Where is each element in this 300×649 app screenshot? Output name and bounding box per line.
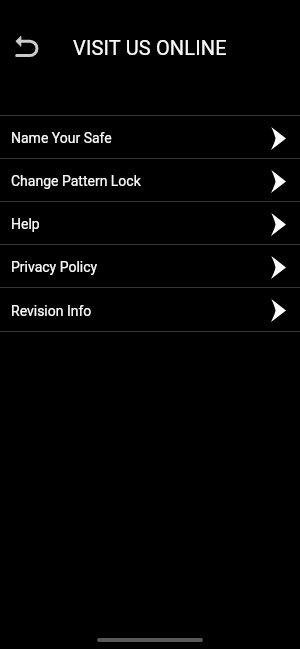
button[interactable]: Privacy Policy bbox=[0, 245, 300, 287]
button[interactable]: Back bbox=[3, 24, 51, 68]
staticText: Help bbox=[11, 216, 271, 232]
staticText: Name Your Safe bbox=[11, 130, 271, 146]
button[interactable]: Help bbox=[0, 202, 300, 244]
staticText: Revision Info bbox=[11, 303, 271, 319]
staticText: Change Pattern Lock bbox=[11, 173, 271, 189]
staticText: VISIT US ONLINE bbox=[73, 36, 227, 59]
button[interactable]: Revision Info bbox=[0, 288, 300, 331]
button[interactable]: Change Pattern Lock bbox=[0, 159, 300, 201]
staticText: Privacy Policy bbox=[11, 259, 271, 275]
button[interactable]: Name Your Safe bbox=[0, 116, 300, 158]
